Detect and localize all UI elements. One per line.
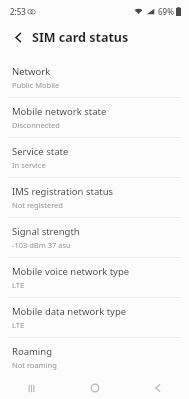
- button[interactable]: Mobile network state: [0, 98, 189, 137]
- staticText: 69%: [158, 6, 174, 17]
- staticText: Signal strength: [12, 225, 80, 238]
- button[interactable]: Recents: [0, 377, 63, 399]
- other: Back: [8, 27, 28, 47]
- staticText: 2:53: [10, 6, 26, 17]
- staticText: Mobile voice network type: [12, 265, 130, 278]
- button[interactable]: Mobile voice network type: [0, 258, 189, 297]
- staticText: In service: [12, 160, 46, 170]
- staticText: Public Mobile: [12, 80, 60, 90]
- button[interactable]: IMS registration status: [0, 178, 189, 217]
- staticText: -103 dBm 37 asu: [12, 240, 71, 250]
- staticText: IMS registration status: [12, 185, 114, 198]
- staticText: Service state: [12, 145, 69, 158]
- button[interactable]: Home: [63, 377, 126, 399]
- staticText: Not roaming: [12, 360, 57, 370]
- staticText: Not registered: [12, 200, 63, 210]
- button[interactable]: Signal strength: [0, 218, 189, 257]
- button[interactable]: Network: [0, 58, 189, 97]
- staticText: Mobile network state: [12, 105, 107, 118]
- button[interactable]: Mobile data network type: [0, 298, 189, 337]
- button[interactable]: Back: [126, 377, 189, 399]
- staticText: LTE: [12, 320, 25, 330]
- button[interactable]: Back: [8, 27, 129, 47]
- staticText: LTE: [12, 280, 25, 290]
- staticText: Network: [12, 65, 51, 78]
- button[interactable]: Service state: [0, 138, 189, 177]
- staticText: Roaming: [12, 345, 53, 358]
- button[interactable]: Roaming: [0, 338, 189, 377]
- staticText: Mobile data network type: [12, 305, 127, 318]
- staticText: Disconnected: [12, 120, 60, 130]
- staticText: SIM card status: [32, 29, 129, 46]
